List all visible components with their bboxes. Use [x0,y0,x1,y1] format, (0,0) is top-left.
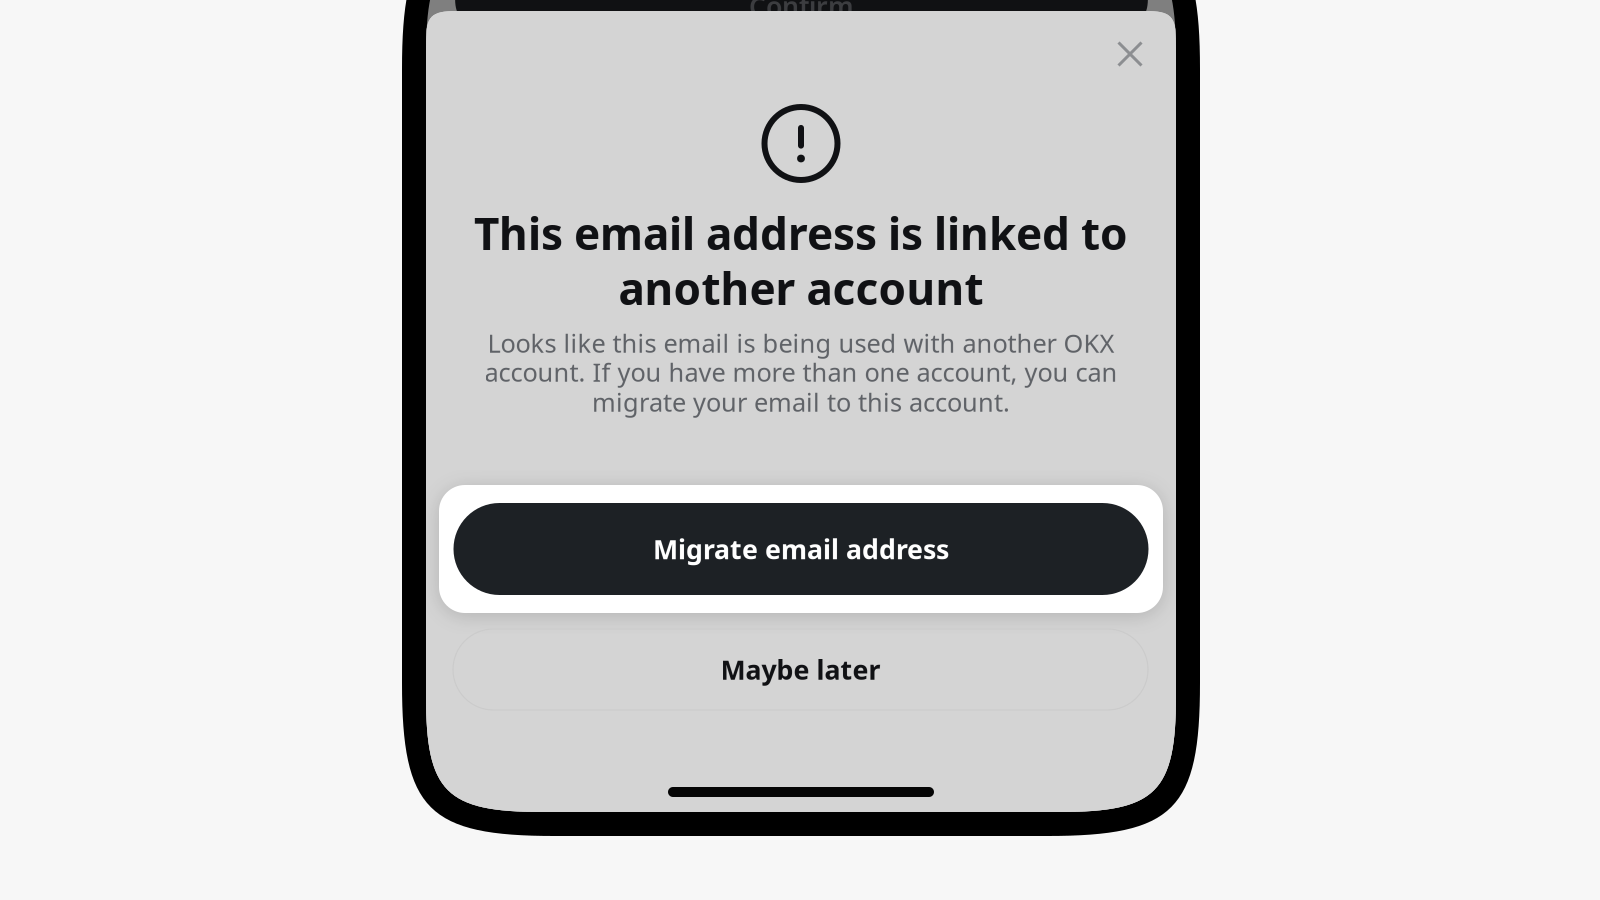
staticText: Confirm [749,0,854,24]
button[interactable]: Migrate email address [439,485,1163,613]
button[interactable]: Maybe later [453,629,1148,710]
staticText: This email address is linked to [474,204,1128,262]
staticText: account. If you have more than one accou… [484,355,1117,389]
button[interactable]: Close [1102,26,1158,82]
staticText: Looks like this email is being used with… [487,326,1114,360]
staticText: Migrate email address [653,531,949,567]
staticText: Maybe later [720,652,880,687]
staticText: another account [618,259,983,317]
staticText: migrate your email to this account. [592,385,1010,419]
